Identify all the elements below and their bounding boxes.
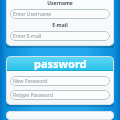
button[interactable]: Retype Password bbox=[10, 90, 110, 100]
staticText: Enter E-mail bbox=[13, 33, 42, 40]
button[interactable]: password bbox=[6, 56, 114, 71]
button[interactable]: Enter E-mail bbox=[10, 31, 110, 41]
button[interactable]: Enter Username bbox=[10, 9, 110, 19]
staticText: password bbox=[34, 56, 87, 71]
staticText: Enter Username bbox=[13, 11, 52, 18]
staticText: E-mail bbox=[6, 22, 114, 29]
staticText: New Password bbox=[13, 78, 48, 85]
button[interactable]: New Password bbox=[10, 76, 110, 86]
staticText: Retype Password bbox=[13, 92, 54, 99]
staticText: Username bbox=[6, 0, 114, 7]
